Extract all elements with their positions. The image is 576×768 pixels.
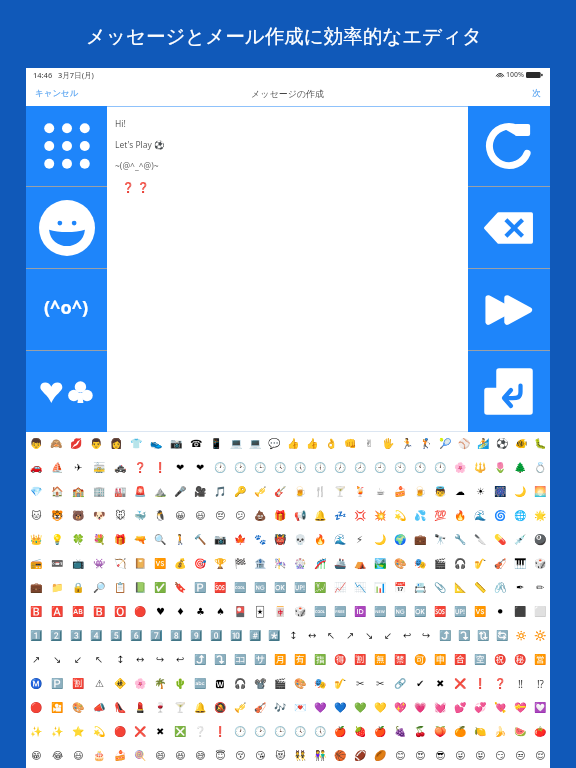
button[interactable]: 👍 — [284, 432, 303, 456]
button[interactable]: 9️⃣ — [186, 624, 206, 648]
button[interactable]: 6️⃣ — [126, 624, 146, 648]
button[interactable]: 📅 — [390, 576, 410, 600]
button[interactable]: Enter — [468, 351, 550, 432]
button[interactable]: 🍺 — [290, 480, 310, 504]
button[interactable]: 🎷 — [470, 552, 490, 576]
button[interactable]: 5️⃣ — [106, 624, 126, 648]
button[interactable]: 🅱️ — [26, 600, 47, 624]
button[interactable]: ↩️ — [170, 648, 190, 672]
button[interactable]: 🐠 — [512, 432, 531, 456]
button[interactable]: ⚡ — [350, 528, 370, 552]
button[interactable]: 🌍 — [390, 528, 410, 552]
button[interactable]: 😅 — [190, 744, 210, 768]
button[interactable]: 0️⃣ — [206, 624, 226, 648]
button[interactable]: 🆗 — [270, 576, 290, 600]
button[interactable]: 🐾 — [250, 528, 270, 552]
button[interactable]: 🏠 — [47, 480, 68, 504]
button[interactable]: 📼 — [47, 552, 68, 576]
button[interactable]: ↕️ — [110, 648, 130, 672]
button[interactable]: 🍸 — [170, 696, 190, 720]
button[interactable]: ✅ — [150, 576, 170, 600]
button[interactable]: 🕘 — [370, 456, 390, 480]
button[interactable]: 💌 — [290, 696, 310, 720]
button[interactable]: 🎨 — [390, 552, 410, 576]
button[interactable]: 🚓 — [110, 456, 130, 480]
button[interactable]: 🏢 — [89, 480, 110, 504]
button[interactable]: 📻 — [26, 552, 47, 576]
button[interactable]: 😍 — [410, 744, 430, 768]
button[interactable]: 🙈 — [46, 432, 66, 456]
button[interactable]: ⁉️ — [530, 672, 550, 696]
button[interactable]: ↩️ — [398, 624, 417, 648]
button[interactable]: 📈 — [330, 576, 350, 600]
button[interactable]: 🕙 — [390, 456, 410, 480]
button[interactable]: 👩 — [106, 432, 126, 456]
button[interactable]: 🔍 — [150, 528, 170, 552]
button[interactable]: ↔️ — [130, 648, 150, 672]
button[interactable]: 🚢 — [330, 552, 350, 576]
button[interactable]: ♦️ — [170, 600, 190, 624]
button[interactable]: 👑 — [26, 528, 47, 552]
button[interactable]: 🍹 — [350, 480, 370, 504]
button[interactable]: 🔎 — [89, 576, 110, 600]
button[interactable]: ✂️ — [370, 672, 390, 696]
button[interactable]: 💫 — [390, 504, 410, 528]
button[interactable]: 🍁 — [230, 528, 250, 552]
button[interactable]: 🆗 — [410, 600, 430, 624]
button[interactable]: 👼 — [430, 480, 450, 504]
button[interactable]: 📉 — [350, 576, 370, 600]
button[interactable]: ❌ — [130, 720, 150, 744]
button[interactable]: 次 — [523, 81, 550, 106]
button[interactable]: 🍓 — [350, 720, 370, 744]
button[interactable]: 🎯 — [190, 552, 210, 576]
button[interactable]: 💞 — [470, 696, 490, 720]
button[interactable]: 🐭 — [110, 504, 130, 528]
button[interactable]: 🔪 — [470, 528, 490, 552]
button[interactable]: 🔴 — [130, 600, 150, 624]
button[interactable]: 🕒 — [250, 456, 270, 480]
button[interactable]: 🆖 — [250, 576, 270, 600]
button[interactable]: 💄 — [130, 696, 150, 720]
button[interactable]: 🌅 — [530, 480, 550, 504]
button[interactable]: ❎ — [170, 720, 190, 744]
button[interactable]: 🆕 — [370, 600, 390, 624]
button[interactable]: ✨ — [26, 720, 47, 744]
button[interactable]: ✖️ — [150, 720, 170, 744]
button[interactable]: 🎴 — [230, 600, 250, 624]
button[interactable]: ⬜ — [530, 600, 550, 624]
button[interactable]: 8️⃣ — [166, 624, 186, 648]
button[interactable]: キャンセル — [26, 81, 88, 106]
button[interactable]: 🎦 — [47, 696, 68, 720]
button[interactable]: 💋 — [66, 432, 86, 456]
button[interactable]: ⚠️ — [89, 672, 110, 696]
button[interactable]: ↙️ — [68, 648, 89, 672]
button[interactable]: ⤵️ — [210, 648, 230, 672]
button[interactable]: 🀄 — [270, 600, 290, 624]
button[interactable]: 🔕 — [210, 696, 230, 720]
button[interactable]: 💰 — [170, 552, 190, 576]
button[interactable]: 👹 — [270, 528, 290, 552]
button[interactable]: 🈚 — [370, 648, 390, 672]
button[interactable]: 📎 — [430, 576, 450, 600]
button[interactable]: 😀 — [170, 504, 190, 528]
button[interactable]: 😄 — [150, 744, 170, 768]
button[interactable]: 🌊 — [330, 528, 350, 552]
button[interactable]: 2️⃣ — [46, 624, 66, 648]
button[interactable]: 🚗 — [26, 456, 47, 480]
button[interactable]: ↗️ — [341, 624, 360, 648]
button[interactable]: 📐 — [450, 576, 470, 600]
button[interactable]: 🌙 — [370, 528, 390, 552]
button[interactable]: 🔃 — [474, 624, 493, 648]
button[interactable]: 🕐 — [210, 456, 230, 480]
button[interactable]: 🆘 — [210, 576, 230, 600]
button[interactable]: 😃 — [190, 504, 210, 528]
button[interactable]: 🎭 — [310, 672, 330, 696]
button[interactable]: 👟 — [146, 432, 166, 456]
button[interactable]: 🕔 — [290, 456, 310, 480]
button[interactable]: 💀 — [290, 528, 310, 552]
button[interactable]: 🔫 — [130, 528, 150, 552]
button[interactable]: 👨 — [86, 432, 106, 456]
button[interactable]: 📣 — [89, 696, 110, 720]
button[interactable]: 💊 — [490, 528, 510, 552]
button[interactable]: 🎢 — [310, 552, 330, 576]
